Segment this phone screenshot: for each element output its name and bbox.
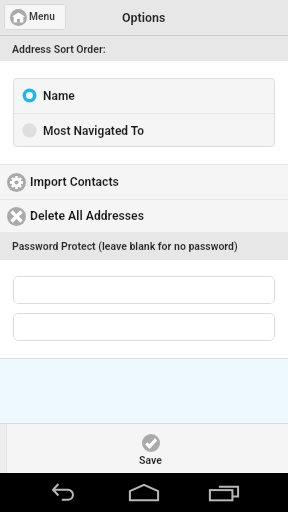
staticText: Name <box>43 89 75 103</box>
button[interactable] <box>13 313 275 341</box>
button[interactable]: Name <box>13 78 275 113</box>
button[interactable]: Back <box>44 473 84 512</box>
button[interactable]: Save <box>125 430 176 470</box>
button[interactable]: Delete All Addresses <box>0 200 288 232</box>
button[interactable]: Menu <box>4 4 66 30</box>
staticText: Most Navigated To <box>43 124 144 138</box>
button[interactable]: Recent apps <box>204 473 244 512</box>
staticText: Menu <box>29 11 55 23</box>
staticText: Address Sort Order: <box>12 43 106 55</box>
button[interactable] <box>13 276 275 304</box>
staticText: Password Protect (leave blank for no pas… <box>12 240 238 252</box>
button[interactable]: Home <box>124 473 164 512</box>
staticText: Options <box>122 10 166 25</box>
staticText: Save <box>139 454 162 466</box>
button[interactable]: Import Contacts <box>0 165 288 199</box>
button[interactable]: Most Navigated To <box>13 114 275 147</box>
staticText: Delete All Addresses <box>30 209 144 223</box>
staticText: Import Contacts <box>30 175 119 189</box>
